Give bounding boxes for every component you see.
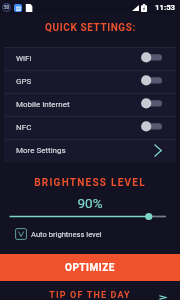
button[interactable]: NFC (4, 116, 176, 139)
button[interactable]: GPS (4, 70, 176, 93)
staticText: 11:53 (155, 3, 176, 12)
button[interactable]: OPTIMIZE (0, 254, 180, 281)
staticText: Mobile Internet (16, 100, 70, 109)
button[interactable]: Mobile Internet (4, 93, 176, 116)
other: NFC toggle (141, 122, 162, 134)
other: WiFi toggle (141, 53, 162, 65)
button[interactable]: TIP OF THE DAY (0, 281, 180, 300)
button[interactable]: Auto brightness level (15, 228, 102, 240)
button[interactable]: More Settings (4, 139, 176, 162)
staticText: TIP OF THE DAY (49, 290, 131, 300)
staticText: WiFi (16, 54, 32, 63)
button[interactable]: Brightness slider (0, 211, 180, 222)
staticText: OPTIMIZE (65, 262, 115, 274)
button[interactable]: WiFi (4, 47, 176, 70)
staticText: QUICK SETTINGS: (45, 22, 136, 34)
other: GPS toggle (141, 76, 162, 88)
staticText: Auto brightness level (31, 230, 102, 239)
staticText: BRIGHTNESS LEVEL (0, 177, 180, 189)
staticText: More Settings (16, 146, 66, 155)
staticText: NFC (16, 123, 32, 132)
staticText: GPS (16, 77, 32, 86)
other: Mobile Internet toggle (141, 99, 162, 111)
staticText: 50 (4, 5, 10, 10)
staticText: 90% (0, 195, 180, 211)
other: Open more settings (154, 144, 162, 157)
